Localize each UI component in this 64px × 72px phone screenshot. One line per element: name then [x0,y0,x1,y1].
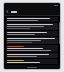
button[interactable] [6,45,58,52]
button[interactable] [6,17,58,22]
button[interactable] [6,37,58,44]
button[interactable] [6,31,58,36]
button[interactable] [6,23,58,30]
button[interactable] [6,59,58,64]
button[interactable] [6,53,58,58]
button[interactable]: Back [4,8,11,15]
